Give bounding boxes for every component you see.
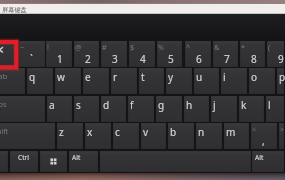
button[interactable]: 7 [212,40,239,68]
button[interactable]: w [54,67,82,95]
other: Esc key highlighted [0,0,285,180]
staticText: i [223,70,226,84]
button[interactable]: l [265,95,285,123]
staticText: o [251,70,258,84]
staticText: d [103,98,110,112]
button[interactable]: Esc [0,40,18,68]
staticText: x [87,125,93,139]
button[interactable]: y [165,67,193,95]
staticText: s [76,98,81,112]
staticText: h [186,98,193,112]
button[interactable]: x [84,122,112,150]
staticText: ( [268,42,271,52]
staticText: v [143,125,149,139]
button[interactable]: k [238,95,265,123]
staticText: 屏幕键盘 [2,6,27,14]
staticText: Tab [0,71,8,81]
staticText: $ [130,42,135,52]
button[interactable]: , [250,122,278,150]
button[interactable]: a [46,95,73,123]
staticText: r [113,70,118,84]
staticText: < [252,124,257,134]
button[interactable]: q [26,67,54,95]
staticText: l [268,98,271,112]
button[interactable]: 4 [128,40,156,68]
staticText: # [102,42,107,52]
staticText: k [241,98,247,112]
staticText: Alt [255,153,264,162]
button[interactable]: Ctrl [9,150,39,173]
button[interactable]: . [278,122,285,150]
staticText: Shift [0,126,9,136]
button[interactable]: j [210,95,238,123]
button[interactable]: 8 [239,40,266,68]
button[interactable]: v [140,122,167,150]
staticText: 4 [140,52,146,66]
staticText: z [59,125,64,139]
button[interactable]: 9 [266,40,285,68]
staticText: g [158,98,165,112]
staticText: u [196,70,203,84]
button[interactable]: c [112,122,140,150]
staticText: t [141,70,145,84]
staticText: % [158,42,164,52]
button[interactable]: r [110,67,138,95]
staticText: 6 [196,52,202,66]
button[interactable]: Caps Lock [0,95,46,123]
button[interactable]: 1 [45,40,73,68]
staticText: p [279,70,285,84]
button[interactable]: s [73,95,100,123]
button[interactable]: g [155,95,183,123]
button[interactable]: 5 [156,40,183,68]
staticText: ` [30,52,33,66]
button[interactable]: p [276,67,285,95]
button[interactable]: i [220,67,248,95]
staticText: e [85,70,91,84]
button[interactable]: u [193,67,220,95]
button[interactable]: m [223,122,250,150]
button[interactable]: t [138,67,165,95]
button[interactable]: Shift [0,122,56,150]
staticText: w [57,70,65,84]
button[interactable]: d [100,95,127,123]
button[interactable]: 屏幕键盘 [0,5,25,14]
staticText: & [214,42,220,52]
staticText: * [241,42,245,52]
button[interactable]: 6 [184,40,212,68]
button[interactable]: Fn [0,150,9,173]
button[interactable]: e [82,67,110,95]
button[interactable]: f [127,95,155,123]
button[interactable]: 3 [100,40,128,68]
staticText: y [168,70,174,84]
staticText: j [213,98,216,112]
button[interactable]: n [195,122,223,150]
staticText: Alt [72,153,81,162]
button[interactable]: o [248,67,276,95]
staticText: n [198,125,205,139]
staticText: f [130,98,134,112]
staticText: 9 [278,52,284,66]
staticText: b [170,125,177,139]
button[interactable]: Alt [251,150,285,173]
staticText: a [49,98,55,112]
button[interactable]: ` [18,40,46,68]
staticText: @ [75,42,82,52]
staticText: 1 [57,52,63,66]
button[interactable]: 2 [73,40,100,68]
staticText: 5 [168,52,174,66]
staticText: m [226,125,236,139]
button[interactable]: Alt [68,150,99,173]
staticText: ^ [186,42,191,52]
staticText: Ctrl [18,153,29,162]
staticText: 8 [251,52,257,66]
staticText: Caps [0,99,7,109]
button[interactable]: Tab [0,67,26,95]
staticText: , [262,134,265,148]
button[interactable]: Space [99,150,252,173]
button[interactable]: h [183,95,210,123]
button[interactable]: b [167,122,195,150]
staticText: q [29,70,36,84]
button[interactable]: Windows [39,150,68,173]
button[interactable]: z [56,122,84,150]
staticText: c [115,125,120,139]
